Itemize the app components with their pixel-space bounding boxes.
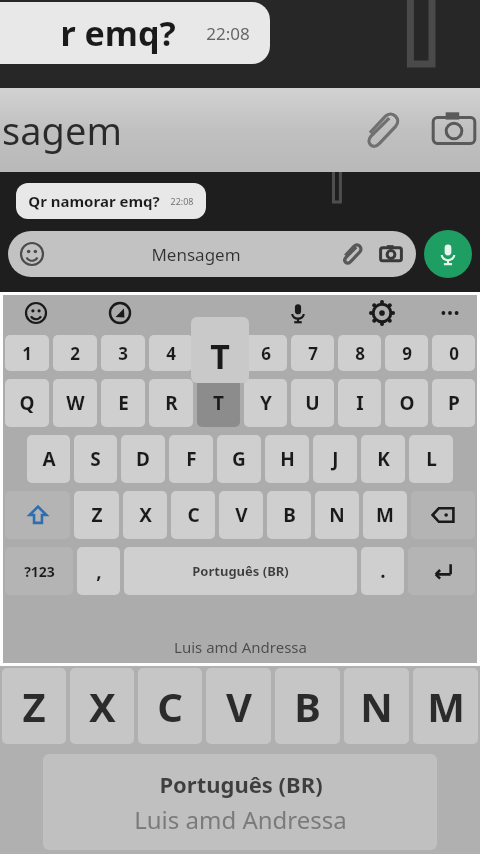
staticText: C (157, 679, 183, 733)
button[interactable]: C (171, 491, 215, 539)
staticText: W (66, 390, 85, 416)
staticText: A (42, 446, 56, 472)
button[interactable]: 9 (385, 335, 428, 371)
button[interactable]: F (169, 435, 213, 483)
button[interactable]: Attach (338, 241, 364, 267)
button[interactable]: Q (5, 379, 49, 427)
staticText: N (329, 502, 345, 528)
staticText: Q (19, 390, 35, 416)
button[interactable] (411, 491, 475, 539)
button[interactable]: A (27, 435, 70, 483)
button[interactable]: 8 (338, 335, 381, 371)
button[interactable]: E (101, 379, 145, 427)
staticText: M (376, 502, 394, 528)
button[interactable]: L (409, 435, 453, 483)
button[interactable]: X (123, 491, 167, 539)
button[interactable]: Emoji (25, 302, 47, 324)
staticText: K (377, 446, 390, 472)
button[interactable]: Voice message (424, 230, 472, 278)
staticText: 22:08 (206, 22, 250, 45)
staticText: 5 (214, 342, 224, 365)
button[interactable]: Camera (378, 241, 404, 267)
staticText: Português (BR) (192, 562, 289, 580)
button[interactable]: M (363, 491, 407, 539)
staticText: 9 (402, 342, 412, 365)
button[interactable]: J (313, 435, 357, 483)
staticText: C (187, 502, 200, 528)
staticText: 22:08 (170, 195, 194, 207)
button[interactable]: Qr namorar emq? (16, 183, 206, 219)
staticText: B (294, 679, 321, 733)
button[interactable]: Stickers (109, 302, 131, 324)
staticText: S (90, 446, 101, 472)
staticText: I (356, 390, 364, 416)
staticText: Luis amd Andressa (134, 803, 347, 836)
staticText: Z (22, 679, 46, 733)
staticText: J (332, 446, 339, 472)
button[interactable]: Voice input (287, 302, 309, 324)
staticText: Mensagem (54, 243, 338, 266)
staticText: G (232, 446, 246, 472)
button[interactable]: K (361, 435, 405, 483)
button[interactable]: 0 (432, 335, 475, 371)
staticText: R (165, 390, 178, 416)
button[interactable]: Português (BR) (124, 547, 357, 595)
button[interactable]: N (315, 491, 359, 539)
staticText: L (426, 446, 437, 472)
button[interactable]: Z (74, 491, 119, 539)
staticText: Y (260, 390, 272, 416)
staticText: 7 (308, 342, 318, 365)
staticText: Qr namorar emq? (28, 191, 160, 211)
other: Emoji (20, 242, 44, 266)
button[interactable]: More (439, 302, 461, 324)
button[interactable]: Settings (371, 302, 393, 324)
button[interactable]: 4 (149, 335, 193, 371)
button[interactable]: W (53, 379, 97, 427)
staticText: X (89, 679, 116, 733)
button[interactable]: . (361, 547, 404, 595)
button[interactable]: I (338, 379, 381, 427)
staticText: T (213, 390, 224, 416)
button[interactable]: T (197, 379, 240, 427)
button[interactable]: S (74, 435, 117, 483)
staticText: . (380, 558, 386, 584)
button[interactable]: 5 (197, 335, 240, 371)
staticText: H (280, 446, 295, 472)
button[interactable] (5, 491, 70, 539)
button[interactable]: 3 (101, 335, 145, 371)
button[interactable]: H (265, 435, 309, 483)
staticText: Luis amd Andressa (174, 637, 307, 657)
button[interactable]: 7 (291, 335, 334, 371)
button[interactable]: 6 (244, 335, 287, 371)
button[interactable]: Y (244, 379, 287, 427)
button[interactable]: U (291, 379, 334, 427)
staticText: V (235, 502, 248, 528)
staticText: D (136, 446, 150, 472)
button[interactable]: 1 (5, 335, 49, 371)
button[interactable]: Emoji (8, 231, 416, 277)
staticText: F (186, 446, 197, 472)
button[interactable] (408, 547, 475, 595)
staticText: 0 (449, 342, 459, 365)
button[interactable]: 2 (53, 335, 97, 371)
staticText: 1 (22, 342, 32, 365)
button[interactable]: , (77, 547, 120, 595)
button[interactable]: O (385, 379, 428, 427)
button[interactable]: G (217, 435, 261, 483)
staticText: 6 (261, 342, 271, 365)
button[interactable]: R (149, 379, 193, 427)
button[interactable]: V (219, 491, 263, 539)
staticText: P (448, 390, 460, 416)
button[interactable]: P (432, 379, 475, 427)
button[interactable]: B (267, 491, 311, 539)
staticText: M (427, 679, 465, 733)
button[interactable]: ?123 (5, 547, 73, 595)
staticText: 4 (166, 342, 176, 365)
button[interactable]: D (121, 435, 165, 483)
staticText: 2 (70, 342, 80, 365)
staticText: O (399, 390, 415, 416)
staticText: V (226, 679, 252, 733)
staticText: E (118, 390, 129, 416)
staticText: Português (BR) (159, 769, 323, 799)
staticText: N (360, 679, 393, 733)
